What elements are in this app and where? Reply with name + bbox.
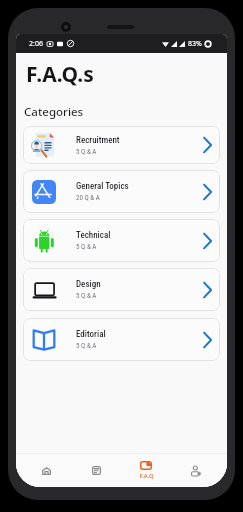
button[interactable]: Technical bbox=[23, 219, 220, 262]
staticText: Editorial bbox=[76, 329, 106, 340]
staticText: 20 Q & A bbox=[76, 194, 100, 202]
button[interactable]: Recruitment bbox=[23, 126, 220, 164]
staticText: F.A.Q bbox=[139, 472, 154, 480]
staticText: 5 Q & A bbox=[76, 342, 97, 350]
staticText: 5 Q & A bbox=[76, 292, 97, 300]
staticText: 5 Q & A bbox=[76, 148, 97, 156]
staticText: F.A.Q.s bbox=[26, 60, 94, 89]
button[interactable]: Home bbox=[22, 454, 71, 487]
button[interactable]: Design bbox=[23, 268, 220, 311]
button[interactable]: Manage accounts bbox=[171, 454, 221, 487]
staticText: Design bbox=[76, 279, 101, 290]
staticText: Technical bbox=[76, 230, 111, 241]
button[interactable]: General Topics bbox=[23, 170, 220, 213]
staticText: Recruitment bbox=[76, 135, 120, 146]
staticText: 2:06 bbox=[29, 39, 43, 49]
staticText: 5 Q & A bbox=[76, 243, 97, 251]
staticText: Categories bbox=[24, 104, 84, 120]
button[interactable]: Editorial bbox=[23, 318, 220, 361]
staticText: General Topics bbox=[76, 181, 129, 192]
button[interactable]: Feed bbox=[71, 454, 121, 487]
staticText: 83% bbox=[188, 39, 202, 49]
button[interactable]: F.A.Q bbox=[121, 454, 171, 487]
